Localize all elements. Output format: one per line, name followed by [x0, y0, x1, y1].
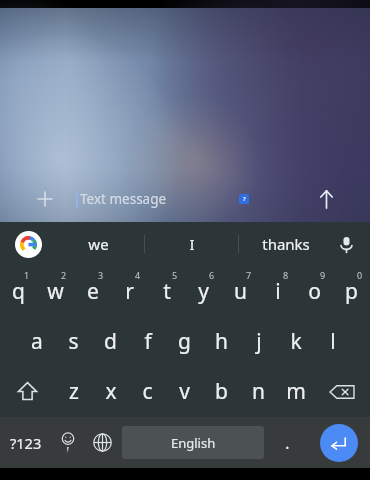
button[interactable]: Voice input — [330, 228, 362, 260]
staticText: s — [68, 327, 79, 356]
staticText: 5 — [172, 269, 178, 281]
button[interactable]: c — [129, 366, 166, 417]
staticText: 6 — [209, 269, 215, 281]
staticText: r — [125, 277, 134, 306]
staticText: c — [142, 377, 153, 406]
button[interactable]: Enter — [308, 417, 370, 468]
staticText: e — [87, 277, 99, 306]
staticText: 1 — [24, 269, 30, 281]
staticText: w — [47, 277, 64, 306]
button[interactable]: e — [74, 266, 111, 316]
button[interactable]: l — [314, 316, 351, 366]
staticText: d — [104, 327, 117, 356]
staticText: thanks — [262, 234, 310, 254]
button[interactable]: t — [148, 266, 185, 316]
staticText: ?123 — [10, 433, 42, 453]
button[interactable]: n — [240, 366, 277, 417]
button[interactable]: Change language — [85, 417, 119, 468]
staticText: y — [198, 277, 209, 306]
button[interactable]: Shift — [0, 366, 55, 417]
button[interactable]: ?123 — [0, 417, 51, 468]
button[interactable]: Add attachment — [30, 184, 60, 214]
staticText: 3 — [98, 269, 104, 281]
staticText: a — [31, 327, 43, 356]
staticText: z — [69, 377, 79, 406]
staticText: x — [105, 377, 117, 406]
button[interactable]: Backspace — [314, 366, 370, 417]
button[interactable]: Emoji — [51, 417, 85, 468]
button[interactable]: w — [37, 266, 74, 316]
staticText: I — [189, 234, 195, 254]
button[interactable]: h — [203, 316, 240, 366]
staticText: j — [256, 327, 262, 356]
button[interactable]: a — [18, 316, 55, 366]
button[interactable]: Emoji — [239, 194, 249, 204]
staticText: ? — [243, 195, 246, 203]
staticText: 8 — [283, 269, 289, 281]
button[interactable]: s — [55, 316, 92, 366]
button[interactable]: u — [222, 266, 259, 316]
button[interactable]: i — [259, 266, 296, 316]
staticText: n — [252, 377, 265, 406]
staticText: we — [88, 234, 109, 254]
button[interactable]: g — [166, 316, 203, 366]
staticText: l — [330, 327, 336, 356]
button[interactable]: . — [267, 417, 308, 468]
button[interactable]: b — [203, 366, 240, 417]
staticText: 4 — [135, 269, 141, 281]
staticText: g — [178, 327, 191, 356]
button[interactable]: we — [52, 222, 144, 266]
staticText: q — [12, 277, 25, 306]
staticText: b — [215, 377, 228, 406]
staticText: v — [179, 377, 190, 406]
staticText: Text message — [80, 190, 167, 208]
button[interactable]: j — [240, 316, 277, 366]
staticText: u — [234, 277, 247, 306]
button[interactable]: r — [111, 266, 148, 316]
button[interactable]: Send — [310, 183, 342, 215]
staticText: 9 — [320, 269, 326, 281]
staticText: p — [345, 277, 358, 306]
button[interactable]: k — [277, 316, 314, 366]
button[interactable]: q — [0, 266, 37, 316]
staticText: f — [144, 327, 152, 356]
button[interactable]: d — [92, 316, 129, 366]
button[interactable]: x — [92, 366, 129, 417]
button[interactable]: o — [296, 266, 333, 316]
button[interactable]: thanks — [239, 222, 332, 266]
staticText: o — [308, 277, 321, 306]
button[interactable]: m — [277, 366, 314, 417]
button[interactable]: v — [166, 366, 203, 417]
staticText: . — [285, 431, 290, 454]
button[interactable]: English — [122, 426, 264, 459]
staticText: 2 — [61, 269, 67, 281]
staticText: English — [171, 434, 216, 452]
staticText: i — [275, 277, 281, 306]
staticText: k — [290, 327, 302, 356]
button[interactable]: z — [55, 366, 92, 417]
button[interactable]: Google — [12, 228, 44, 260]
button[interactable]: f — [129, 316, 166, 366]
button[interactable]: I — [145, 222, 238, 266]
staticText: h — [215, 327, 228, 356]
staticText: t — [163, 277, 171, 306]
button[interactable]: p — [333, 266, 370, 316]
staticText: 7 — [246, 269, 252, 281]
button[interactable]: y — [185, 266, 222, 316]
staticText: 0 — [357, 269, 363, 281]
staticText: m — [286, 377, 306, 406]
